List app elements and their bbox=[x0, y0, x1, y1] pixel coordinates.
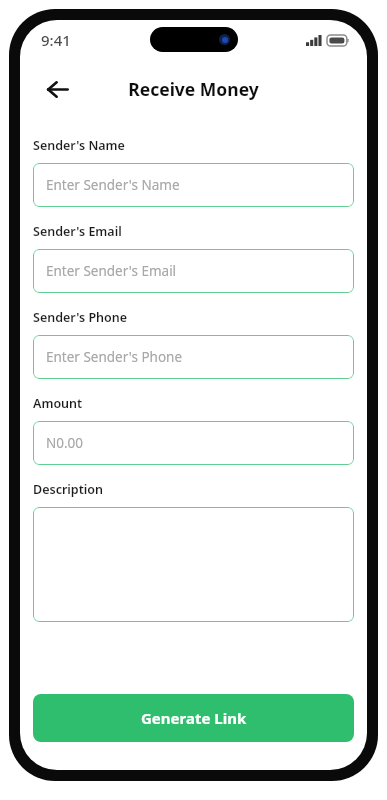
button[interactable]: N0.00 bbox=[33, 421, 354, 465]
button[interactable]: Back bbox=[40, 72, 74, 106]
button[interactable] bbox=[33, 507, 354, 622]
staticText: Amount bbox=[33, 395, 83, 412]
staticText: N0.00 bbox=[46, 434, 84, 452]
staticText: Generate Link bbox=[141, 708, 247, 728]
staticText: Sender's Name bbox=[33, 137, 125, 154]
staticText: Enter Sender's Name bbox=[46, 176, 180, 194]
staticText: Sender's Email bbox=[33, 223, 122, 240]
button[interactable]: Enter Sender's Name bbox=[33, 163, 354, 207]
staticText: Enter Sender's Email bbox=[46, 262, 177, 280]
staticText: Description bbox=[33, 481, 103, 498]
staticText: Sender's Phone bbox=[33, 309, 128, 326]
button[interactable]: Generate Link bbox=[33, 694, 354, 742]
button[interactable]: Enter Sender's Phone bbox=[33, 335, 354, 379]
staticText: Enter Sender's Phone bbox=[46, 348, 183, 366]
staticText: Receive Money bbox=[20, 77, 367, 101]
staticText: 9:41 bbox=[41, 30, 71, 50]
button[interactable]: Enter Sender's Email bbox=[33, 249, 354, 293]
